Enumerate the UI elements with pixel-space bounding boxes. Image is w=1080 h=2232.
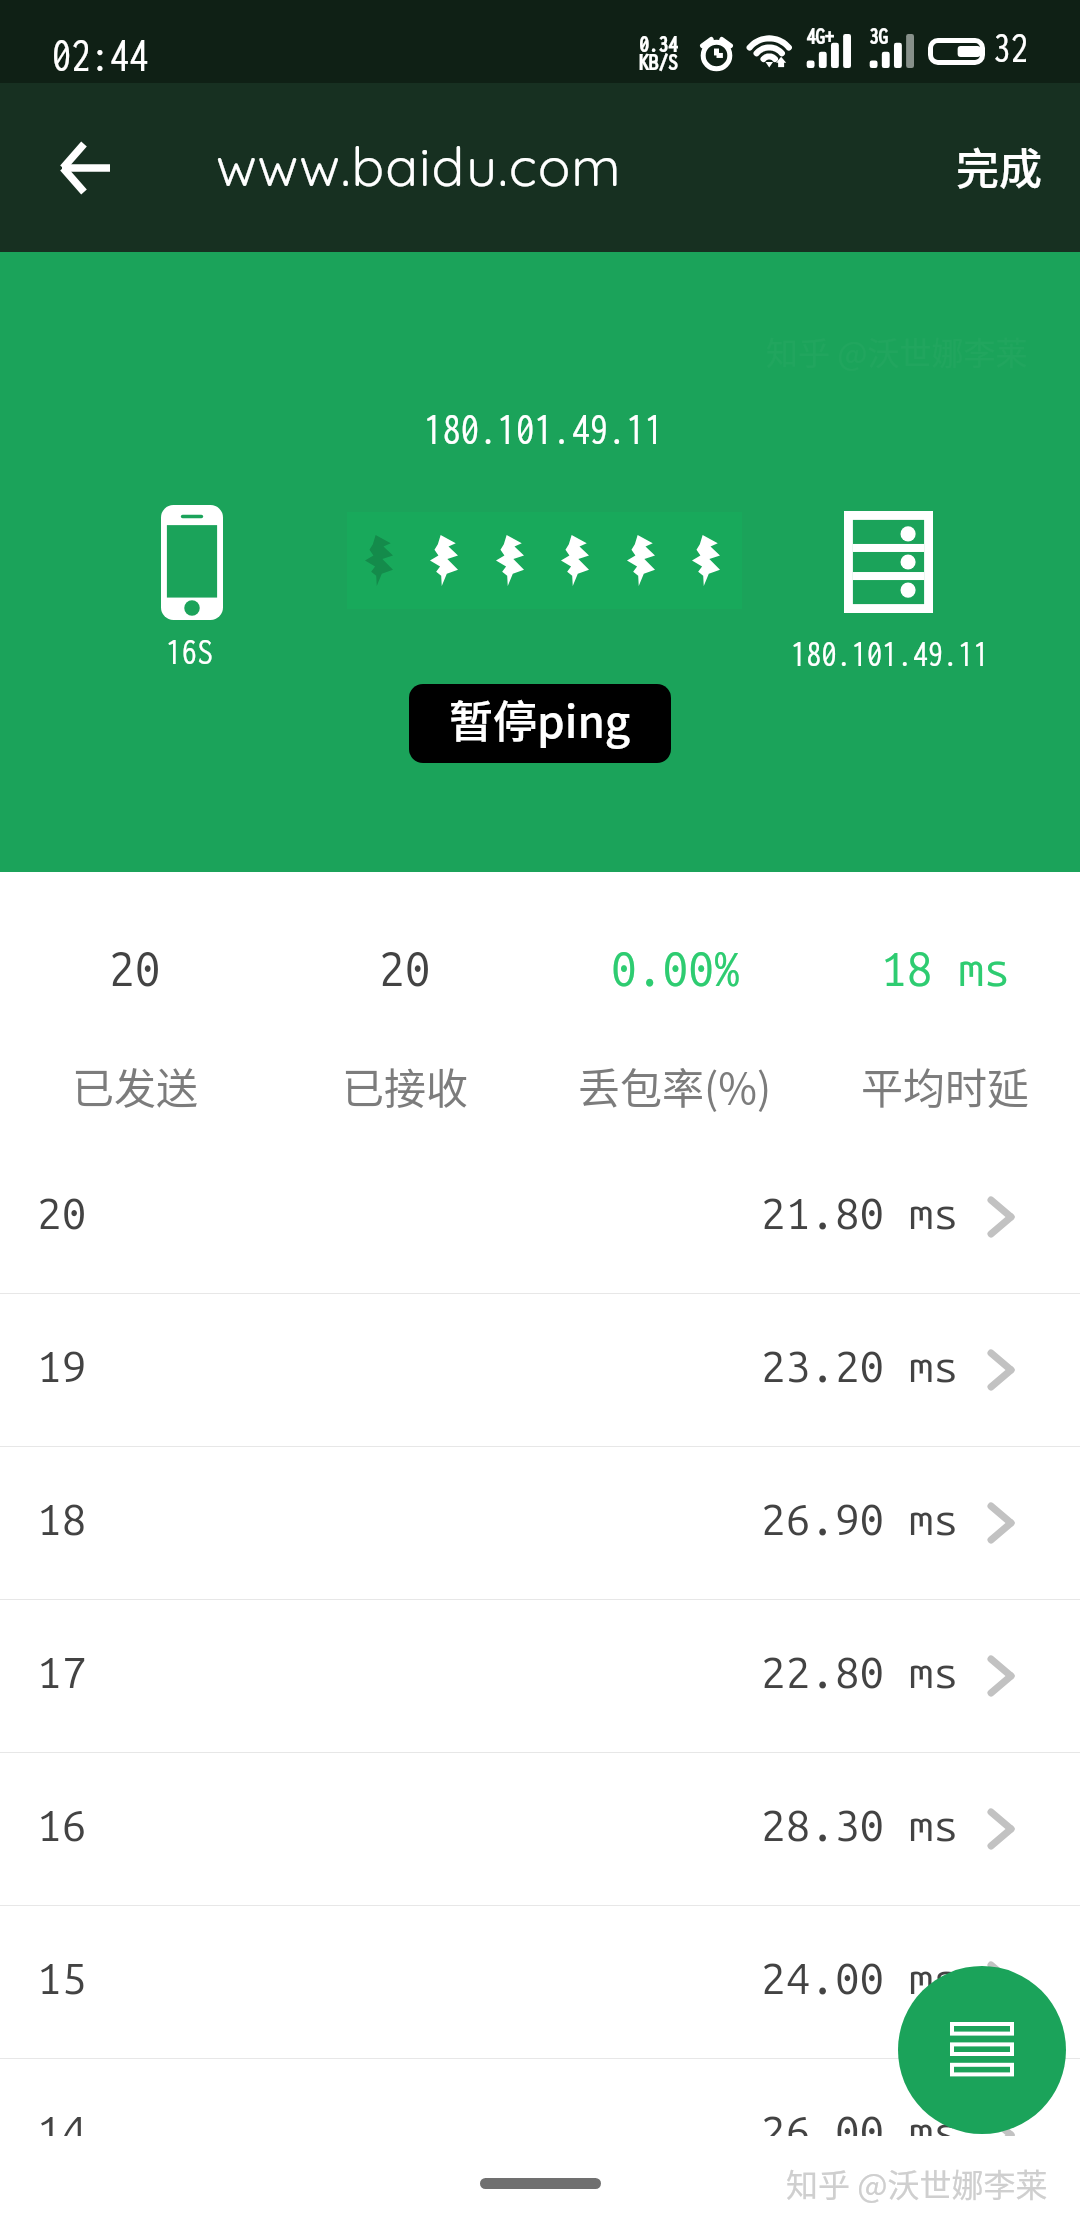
- button[interactable]: 18: [0, 1447, 1080, 1599]
- staticText: 26.90 ms: [761, 1494, 959, 1543]
- staticText: 20: [37, 1188, 87, 1237]
- staticText: 完成: [956, 135, 1042, 197]
- staticText: 28.30 ms: [761, 1800, 959, 1849]
- button[interactable]: 15: [0, 1906, 1080, 2058]
- staticText: 0.00%: [611, 943, 740, 995]
- staticText: 20: [379, 943, 431, 995]
- staticText: 16: [37, 1800, 87, 1849]
- staticText: 18: [37, 1494, 87, 1543]
- staticText: 15: [37, 1953, 87, 2002]
- button[interactable]: 19: [0, 1294, 1080, 1446]
- button[interactable]: Back: [36, 120, 132, 216]
- staticText: 22.80 ms: [761, 1647, 959, 1696]
- staticText: 0.34: [639, 31, 678, 56]
- staticText: 4G+: [806, 24, 834, 48]
- staticText: 已接收: [342, 1055, 469, 1116]
- button[interactable]: 17: [0, 1600, 1080, 1752]
- staticText: 19: [37, 1341, 87, 1390]
- staticText: 180.101.49.11: [791, 633, 989, 673]
- staticText: 已发送: [72, 1055, 199, 1116]
- staticText: 21.80 ms: [761, 1188, 959, 1237]
- staticText: www.baidu.com: [216, 132, 622, 200]
- staticText: 180.101.49.11: [424, 404, 664, 452]
- staticText: 26.00 ms: [761, 2106, 959, 2136]
- staticText: 23.20 ms: [761, 1341, 959, 1390]
- staticText: 14: [37, 2106, 87, 2136]
- staticText: 32: [993, 24, 1029, 70]
- staticText: 20: [109, 943, 161, 995]
- staticText: 24.00 ms: [761, 1953, 959, 2002]
- staticText: 3G: [869, 24, 888, 48]
- staticText: 丢包率(%): [578, 1055, 772, 1116]
- button[interactable]: 14: [0, 2059, 1080, 2136]
- button[interactable]: Show ping list: [898, 1966, 1066, 2134]
- button[interactable]: 20: [0, 1141, 1080, 1293]
- staticText: 16S: [166, 630, 213, 671]
- button[interactable]: 完成: [918, 117, 1080, 219]
- staticText: 02:44: [52, 30, 149, 80]
- staticText: 17: [37, 1647, 87, 1696]
- staticText: KB/S: [639, 49, 678, 74]
- staticText: 平均时延: [861, 1055, 1030, 1116]
- staticText: 知乎 @沃世娜李莱: [786, 2160, 1048, 2206]
- button[interactable]: 暂停ping: [409, 684, 671, 763]
- staticText: 18 ms: [881, 943, 1010, 995]
- staticText: 暂停ping: [449, 687, 631, 751]
- button[interactable]: 16: [0, 1753, 1080, 1905]
